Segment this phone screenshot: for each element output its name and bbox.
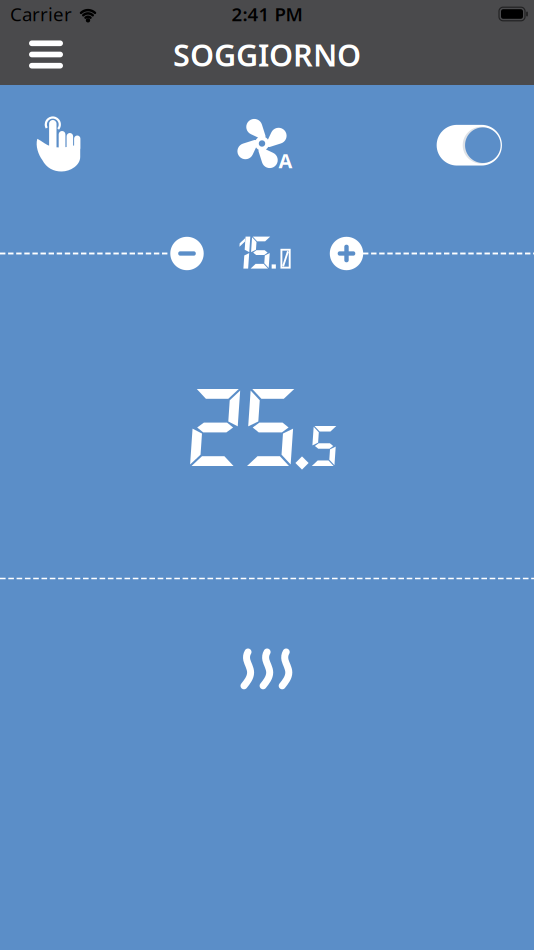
button[interactable]: Decrease temperature [170,236,204,270]
button[interactable]: Increase temperature [329,236,363,270]
staticText: 2:41 PM [231,2,302,26]
button[interactable]: Menu [29,40,63,69]
button[interactable]: Manual mode [37,116,82,172]
staticText: SOGGIORNO [173,34,361,75]
button[interactable]: Fan auto [230,115,294,173]
staticText: Carrier [10,2,72,26]
staticText: A [278,147,292,174]
button[interactable]: On [436,125,502,166]
